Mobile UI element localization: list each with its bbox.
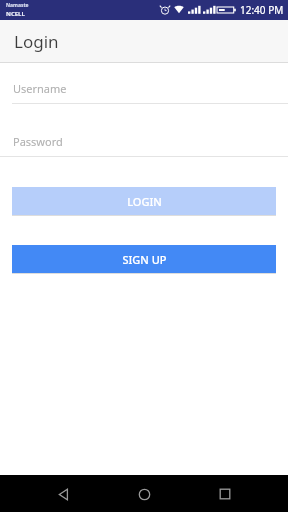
- button[interactable]: LOGIN: [12, 187, 276, 215]
- button[interactable]: Password: [0, 126, 288, 156]
- button[interactable]: Username: [0, 73, 288, 103]
- staticText: NCELL: [6, 10, 25, 18]
- button[interactable]: Home: [126, 476, 162, 512]
- button[interactable]: SIGN UP: [12, 245, 276, 273]
- staticText: Password: [13, 134, 63, 149]
- staticText: 12:40 PM: [240, 3, 284, 17]
- staticText: LOGIN: [127, 194, 162, 209]
- staticText: SIGN UP: [122, 252, 167, 267]
- staticText: Username: [13, 81, 67, 96]
- staticText: Namaste: [6, 2, 29, 9]
- staticText: Login: [14, 30, 59, 53]
- button[interactable]: Back: [45, 476, 81, 512]
- button[interactable]: Recents: [207, 476, 243, 512]
